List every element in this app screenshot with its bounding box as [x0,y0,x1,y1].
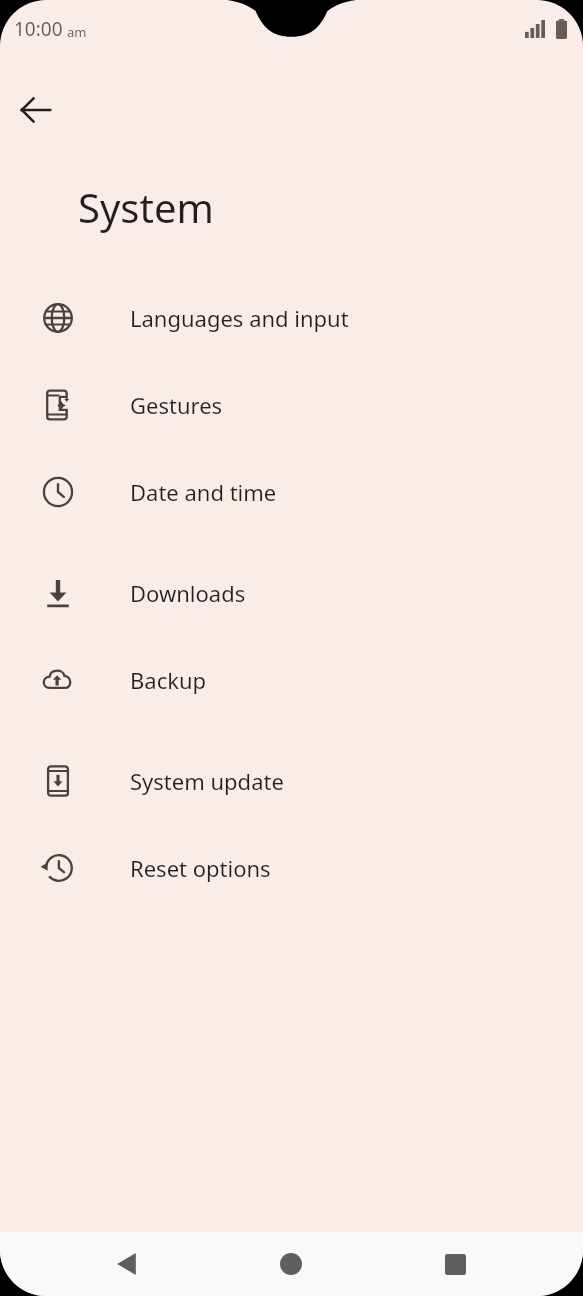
button[interactable]: Gestures [0,361,583,448]
button[interactable]: Home [255,1232,327,1296]
staticText: System [78,180,214,234]
staticText: Gestures [130,390,223,420]
button[interactable]: Back [91,1232,163,1296]
staticText: Backup [130,665,207,695]
button[interactable]: Languages and input [0,274,583,361]
staticText: Date and time [130,477,277,507]
button[interactable]: System update [0,737,583,824]
staticText: System update [130,766,284,796]
button[interactable]: Recent apps [419,1232,491,1296]
staticText: Downloads [130,578,246,608]
button[interactable]: Downloads [0,549,583,636]
staticText: Languages and input [130,303,349,333]
staticText: 10:00 [14,16,63,42]
button[interactable]: Reset options [0,824,583,911]
button[interactable]: Date and time [0,448,583,535]
staticText: am [67,23,87,41]
button[interactable]: Backup [0,636,583,723]
button[interactable]: Back [8,82,64,138]
staticText: Reset options [130,853,271,883]
